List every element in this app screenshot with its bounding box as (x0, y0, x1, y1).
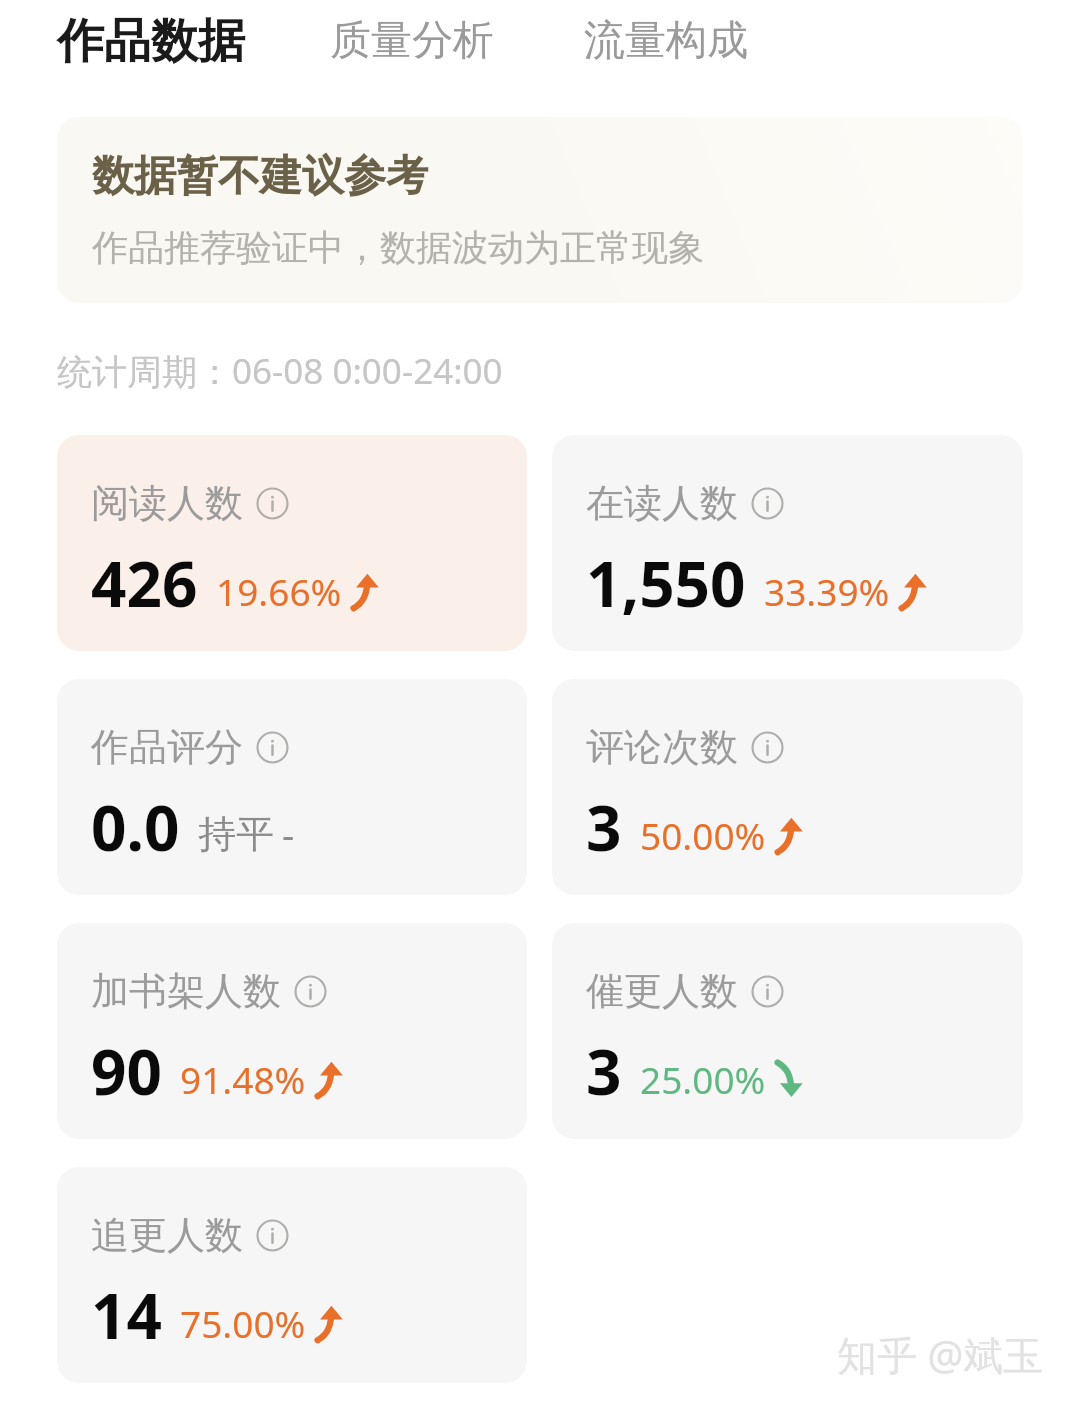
staticText: 3 (586, 785, 622, 869)
staticText: 质量分析 (330, 15, 494, 67)
button[interactable]: 催更人数 (552, 923, 1023, 1139)
staticText: 评论次数 (586, 723, 738, 771)
staticText: 催更人数 (586, 967, 738, 1015)
staticText: 追更人数 (91, 1211, 243, 1259)
staticText: 90 (91, 1029, 162, 1113)
staticText: 流量构成 (584, 15, 748, 67)
button[interactable]: 说明 (751, 975, 784, 1008)
button[interactable]: 在读人数 (552, 435, 1023, 651)
button[interactable]: 质量分析 (330, 15, 494, 67)
button[interactable]: 说明 (294, 975, 327, 1008)
staticText: 426 (91, 541, 198, 625)
button[interactable]: 作品评分 (57, 679, 527, 895)
button[interactable]: 作品数据 (57, 12, 245, 71)
button[interactable]: 说明 (256, 487, 289, 520)
button[interactable]: 说明 (256, 1219, 289, 1252)
staticText: 统计周期：06-08 0:00-24:00 (57, 347, 503, 395)
staticText: 作品评分 (91, 723, 243, 771)
button[interactable]: 评论次数 (552, 679, 1023, 895)
staticText: 持平 (198, 810, 274, 858)
button[interactable]: 加书架人数 (57, 923, 527, 1139)
staticText: 知乎 @斌玉 (837, 1327, 1044, 1382)
button[interactable]: 阅读人数 (57, 435, 527, 651)
staticText: 在读人数 (586, 479, 738, 527)
button[interactable]: 追更人数 (57, 1167, 527, 1383)
staticText: 33.39% (764, 566, 890, 616)
staticText: 19.66% (216, 566, 342, 616)
staticText: 阅读人数 (91, 479, 243, 527)
button[interactable]: 流量构成 (584, 15, 748, 67)
staticText: 作品推荐验证中，数据波动为正常现象 (92, 225, 704, 270)
staticText: 0.0 (91, 785, 180, 869)
staticText: 91.48% (180, 1054, 306, 1104)
staticText: 作品数据 (57, 12, 245, 71)
staticText: 25.00% (640, 1054, 766, 1104)
staticText: 数据暂不建议参考 (92, 150, 428, 203)
staticText: - (282, 808, 295, 860)
staticText: 3 (586, 1029, 622, 1113)
staticText: 75.00% (180, 1298, 306, 1348)
button[interactable]: 说明 (256, 731, 289, 764)
staticText: 14 (91, 1273, 162, 1357)
staticText: 加书架人数 (91, 967, 281, 1015)
button[interactable]: 数据暂不建议参考 (57, 117, 1023, 303)
staticText: 1,550 (586, 541, 746, 625)
button[interactable]: 说明 (751, 731, 784, 764)
staticText: 50.00% (640, 810, 766, 860)
button[interactable]: 说明 (751, 487, 784, 520)
